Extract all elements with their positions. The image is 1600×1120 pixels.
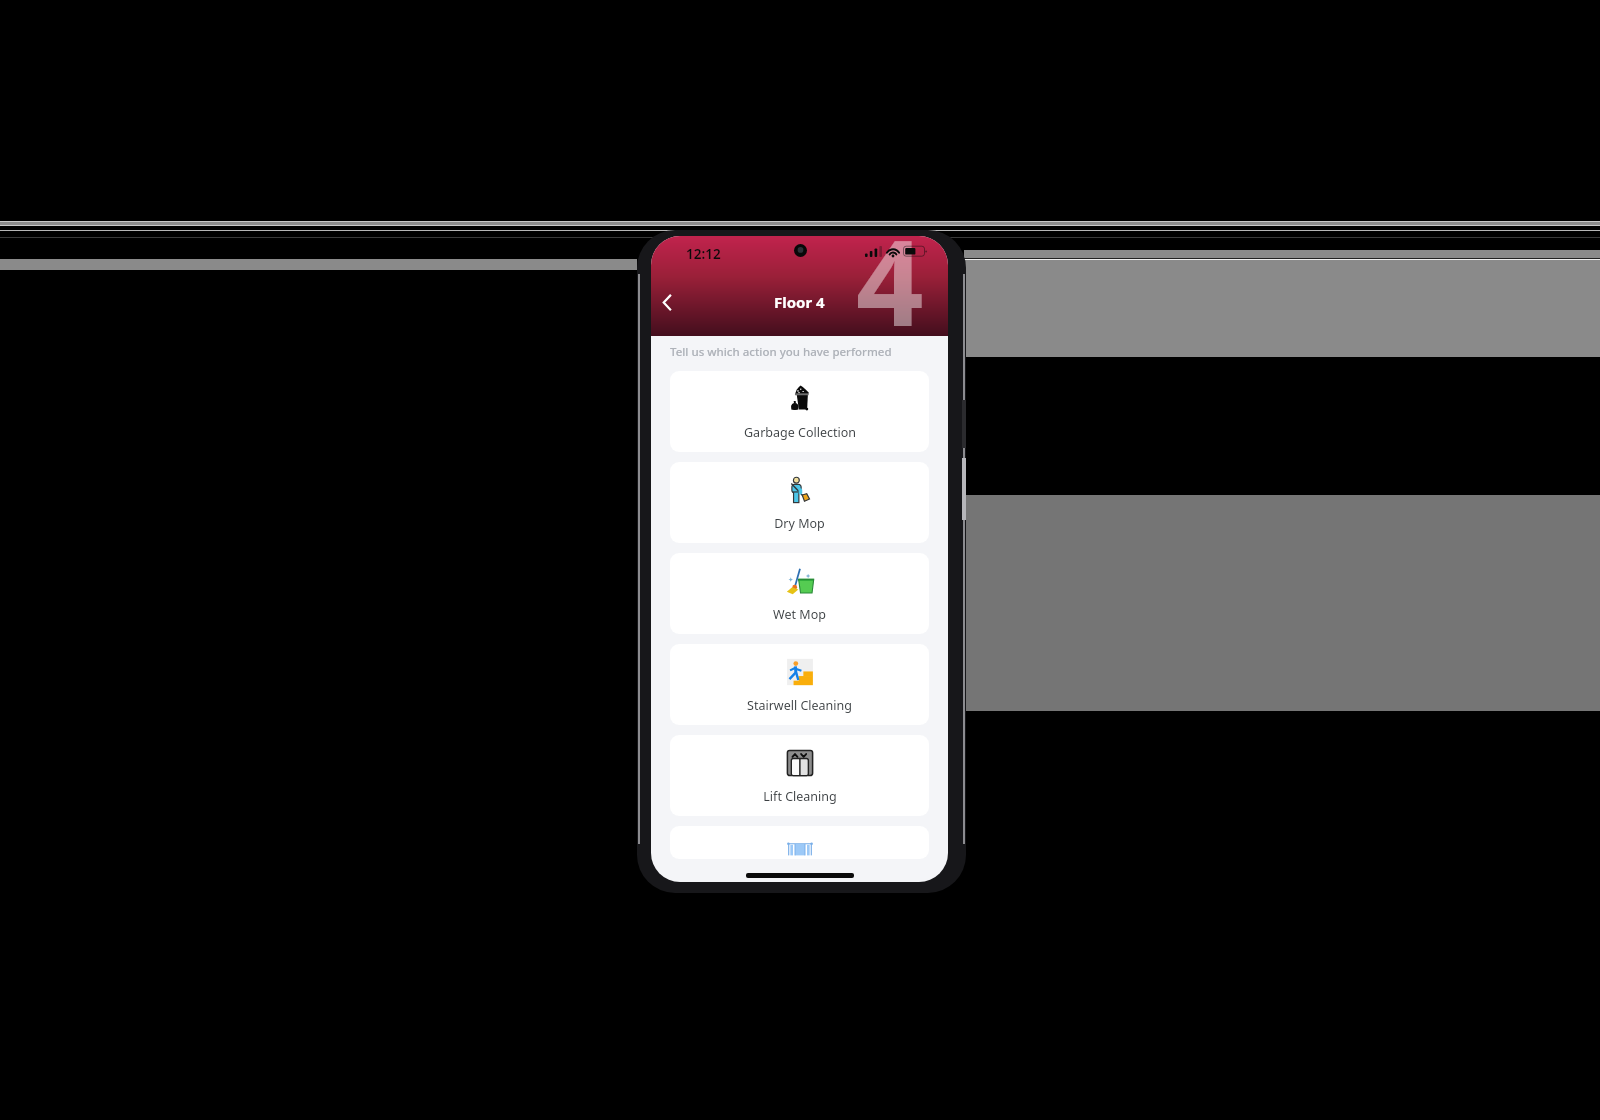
staticText: Lift Cleaning	[763, 788, 837, 805]
staticText: Dry Mop	[774, 515, 825, 532]
staticText: 4	[856, 236, 924, 361]
button[interactable]: Lift Cleaning	[670, 735, 929, 816]
staticText: Floor 4	[774, 292, 825, 312]
staticText: Stairwell Cleaning	[747, 697, 852, 714]
button[interactable]: Window Cleaning	[670, 826, 929, 859]
button[interactable]: Stairwell Cleaning	[670, 644, 929, 725]
button[interactable]: Garbage Collection	[670, 371, 929, 452]
staticText: Garbage Collection	[744, 424, 856, 441]
staticText: Tell us which action you have performed	[670, 344, 892, 360]
staticText: 12:12	[686, 245, 721, 263]
button[interactable]: Wet Mop	[670, 553, 929, 634]
button[interactable]: Dry Mop	[670, 462, 929, 543]
staticText: Wet Mop	[773, 606, 826, 623]
button[interactable]: Back	[651, 287, 681, 317]
